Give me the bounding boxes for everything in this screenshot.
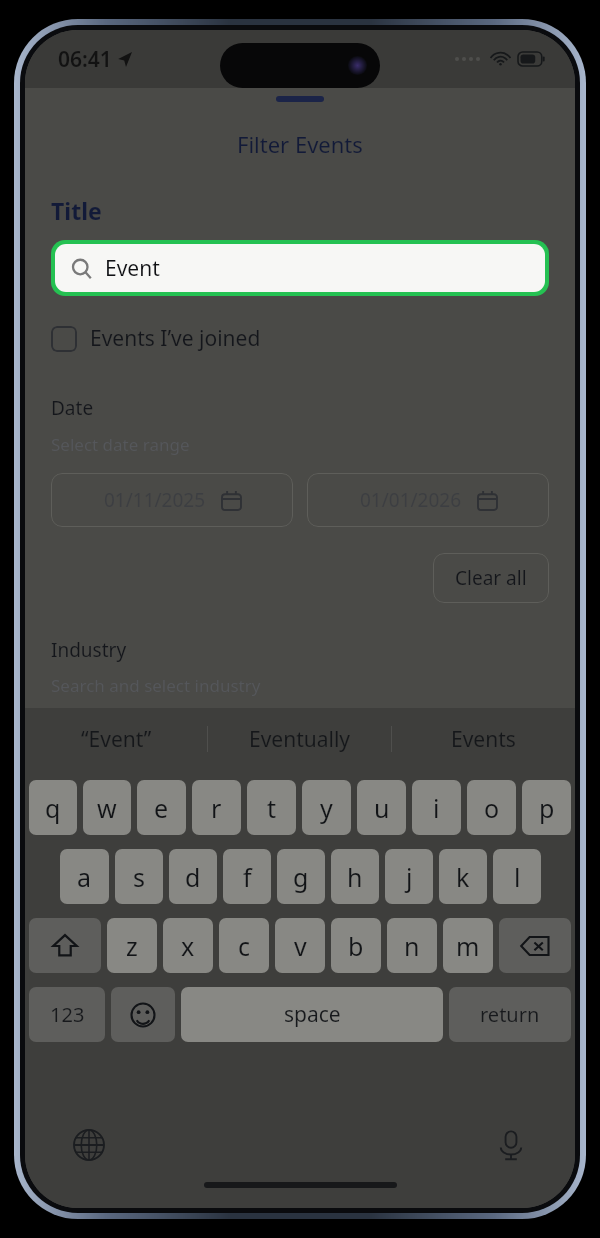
- staticText: f: [243, 860, 252, 894]
- staticText: x: [181, 929, 195, 963]
- staticText: Clear all: [455, 565, 527, 591]
- button[interactable]: o: [467, 780, 516, 835]
- staticText: g: [293, 860, 309, 894]
- staticText: Select date range: [51, 433, 190, 456]
- button[interactable]: “Event”: [25, 708, 207, 770]
- button[interactable]: Backspace: [499, 918, 571, 973]
- button[interactable]: t: [247, 780, 296, 835]
- button[interactable]: m: [443, 918, 493, 973]
- staticText: i: [433, 791, 440, 825]
- staticText: Date: [51, 395, 94, 421]
- staticText: m: [456, 929, 480, 963]
- staticText: k: [456, 860, 470, 894]
- button[interactable]: s: [115, 849, 163, 904]
- staticText: e: [154, 791, 169, 825]
- staticText: Events: [451, 725, 516, 754]
- button[interactable]: 123: [29, 987, 105, 1042]
- button[interactable]: Emoji: [111, 987, 175, 1042]
- staticText: n: [404, 929, 420, 963]
- button[interactable]: e: [137, 780, 186, 835]
- button[interactable]: g: [277, 849, 325, 904]
- staticText: b: [348, 929, 364, 963]
- staticText: a: [77, 860, 92, 894]
- staticText: p: [539, 791, 555, 825]
- button[interactable]: Change keyboard: [69, 1125, 109, 1165]
- staticText: o: [484, 791, 500, 825]
- staticText: w: [97, 791, 117, 825]
- button[interactable]: v: [275, 918, 325, 973]
- button[interactable]: Clear all: [433, 553, 549, 603]
- button[interactable]: Events I’ve joined: [51, 324, 549, 353]
- button[interactable]: a: [60, 849, 109, 904]
- button[interactable]: Shift: [29, 918, 101, 973]
- staticText: “Event”: [81, 725, 152, 754]
- staticText: 123: [50, 1001, 85, 1028]
- button[interactable]: space: [181, 987, 443, 1042]
- staticText: s: [133, 860, 145, 894]
- staticText: v: [294, 929, 307, 963]
- button[interactable]: Events: [392, 708, 575, 770]
- staticText: j: [406, 860, 413, 894]
- staticText: h: [347, 860, 363, 894]
- button[interactable]: Event: [51, 240, 549, 296]
- button[interactable]: Eventually: [208, 708, 391, 770]
- staticText: Event: [105, 254, 160, 283]
- staticText: y: [320, 791, 333, 825]
- button[interactable]: z: [107, 918, 157, 973]
- button[interactable]: q: [29, 780, 77, 835]
- button[interactable]: w: [83, 780, 131, 835]
- button[interactable]: x: [163, 918, 213, 973]
- staticText: Eventually: [249, 725, 351, 754]
- button[interactable]: p: [522, 780, 571, 835]
- button[interactable]: 01/01/2026: [307, 473, 549, 527]
- button[interactable]: n: [387, 918, 437, 973]
- staticText: return: [480, 1001, 540, 1028]
- button[interactable]: b: [331, 918, 381, 973]
- staticText: Industry: [51, 637, 127, 663]
- button[interactable]: j: [385, 849, 433, 904]
- staticText: Events I’ve joined: [90, 324, 261, 353]
- staticText: l: [514, 860, 521, 894]
- button[interactable]: k: [439, 849, 487, 904]
- button[interactable]: u: [357, 780, 406, 835]
- button[interactable]: Dictate: [491, 1125, 531, 1165]
- staticText: Search and select industry: [51, 674, 261, 697]
- button[interactable]: return: [449, 987, 571, 1042]
- button[interactable]: r: [192, 780, 241, 835]
- button[interactable]: d: [169, 849, 217, 904]
- button[interactable]: h: [331, 849, 379, 904]
- button[interactable]: y: [302, 780, 351, 835]
- staticText: q: [45, 791, 61, 825]
- staticText: c: [238, 929, 251, 963]
- staticText: t: [267, 791, 277, 825]
- staticText: 06:41: [58, 45, 112, 74]
- staticText: r: [211, 791, 222, 825]
- button[interactable]: i: [412, 780, 461, 835]
- button[interactable]: c: [219, 918, 269, 973]
- staticText: u: [374, 791, 390, 825]
- button[interactable]: 01/11/2025: [51, 473, 293, 527]
- button[interactable]: f: [223, 849, 271, 904]
- staticText: Title: [51, 195, 102, 226]
- button[interactable]: l: [493, 849, 541, 904]
- staticText: 01/11/2025: [104, 487, 206, 513]
- staticText: z: [126, 929, 138, 963]
- staticText: space: [284, 1000, 341, 1029]
- staticText: 01/01/2026: [360, 487, 462, 513]
- staticText: Filter Events: [237, 129, 363, 159]
- staticText: d: [185, 860, 201, 894]
